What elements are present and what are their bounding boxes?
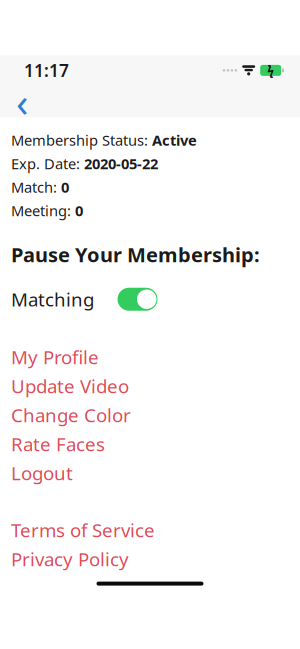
button[interactable]: Matching toggle, on [117,288,157,311]
staticText: Match: [11,177,61,197]
button[interactable]: Terms of Service [11,516,191,545]
staticText: Update Video [11,374,129,398]
staticText: Meeting: [11,201,75,220]
staticText: Change Color [11,403,131,427]
button[interactable]: Privacy Policy [11,545,191,574]
staticText: Membership Status: [11,130,152,150]
staticText: 0 [75,201,83,220]
staticText: Matching [11,287,94,312]
button[interactable]: Update Video [11,372,191,401]
staticText: Pause Your Membership: [11,241,260,268]
button[interactable]: Change Color [11,401,191,430]
staticText: Rate Faces [11,432,105,456]
button[interactable]: My Profile [11,343,191,372]
staticText: Logout [11,461,73,485]
staticText: 11:17 [24,59,69,82]
staticText: My Profile [11,345,99,369]
staticText: ϟ [267,62,274,78]
staticText: 0 [61,177,69,197]
staticText: Terms of Service [11,518,155,542]
staticText: ‹ [16,75,28,128]
button[interactable]: Logout [11,459,191,488]
button[interactable]: Rate Faces [11,430,191,459]
button[interactable]: Back [2,85,42,117]
staticText: Exp. Date: [11,154,84,173]
staticText: Privacy Policy [11,547,129,571]
staticText: Active [152,130,197,150]
staticText: 2020-05-22 [84,154,158,173]
